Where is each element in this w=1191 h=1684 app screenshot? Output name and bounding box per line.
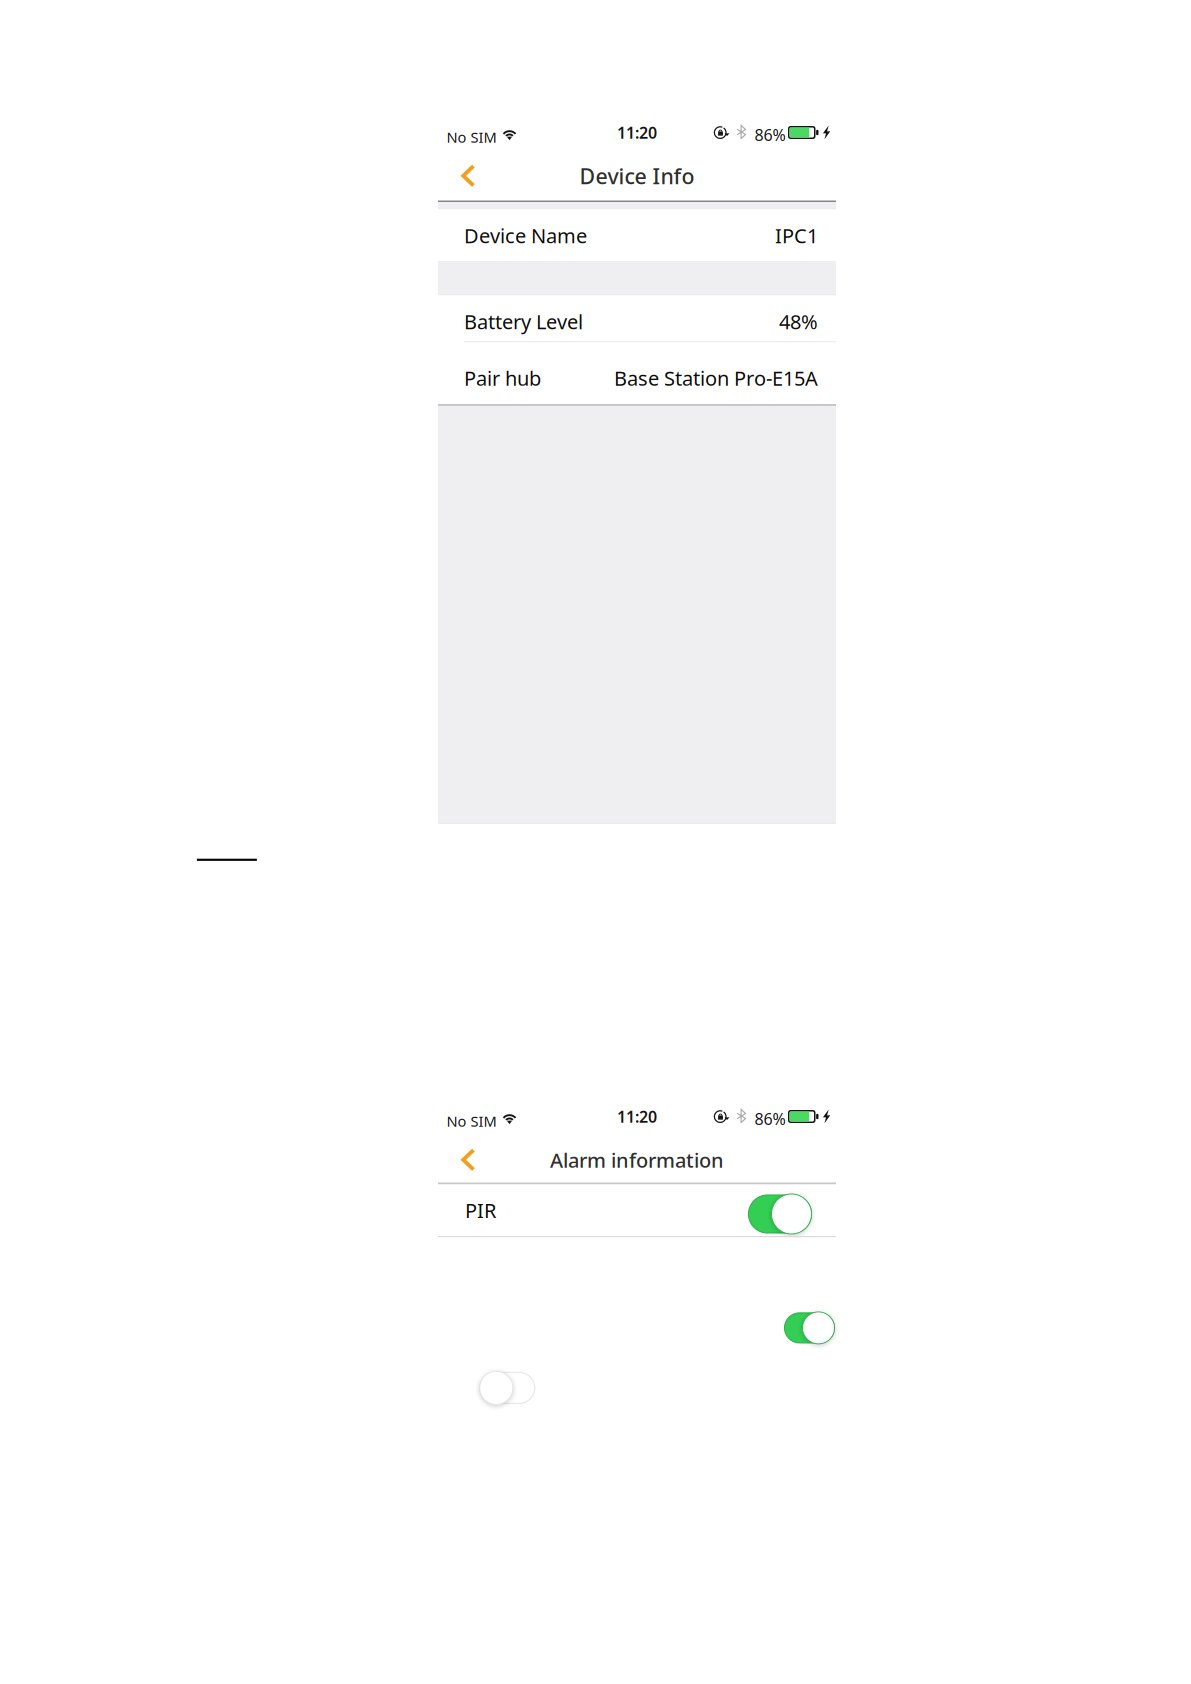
button[interactable]: PIR	[438, 1184, 836, 1236]
button[interactable]: Back	[438, 1134, 484, 1181]
staticText: No SIM	[446, 127, 496, 147]
staticText: Battery Level	[464, 308, 583, 335]
staticText: Pair hub	[464, 365, 541, 391]
staticText: IPC1	[775, 222, 818, 249]
staticText: Device Name	[464, 222, 587, 249]
staticText: PIR	[465, 1197, 496, 1224]
staticText: 86%	[754, 1108, 785, 1129]
staticText: No SIM	[446, 1111, 496, 1131]
staticText: Device Info	[579, 162, 694, 190]
button[interactable]: Back	[438, 150, 484, 197]
staticText: Alarm information	[550, 1147, 724, 1173]
button[interactable]: Device Name	[438, 209, 836, 261]
button[interactable]: Switch off	[480, 1371, 535, 1404]
staticText: Base Station Pro-E15A	[614, 365, 818, 391]
button[interactable]: Battery Level	[438, 295, 836, 341]
staticText: 11:20	[617, 1106, 657, 1127]
staticText: 86%	[754, 124, 785, 145]
staticText: 48%	[779, 308, 818, 335]
staticText: 11:20	[617, 122, 657, 143]
button[interactable]: Pair hub	[438, 342, 836, 404]
button[interactable]: Switch on	[784, 1312, 834, 1344]
